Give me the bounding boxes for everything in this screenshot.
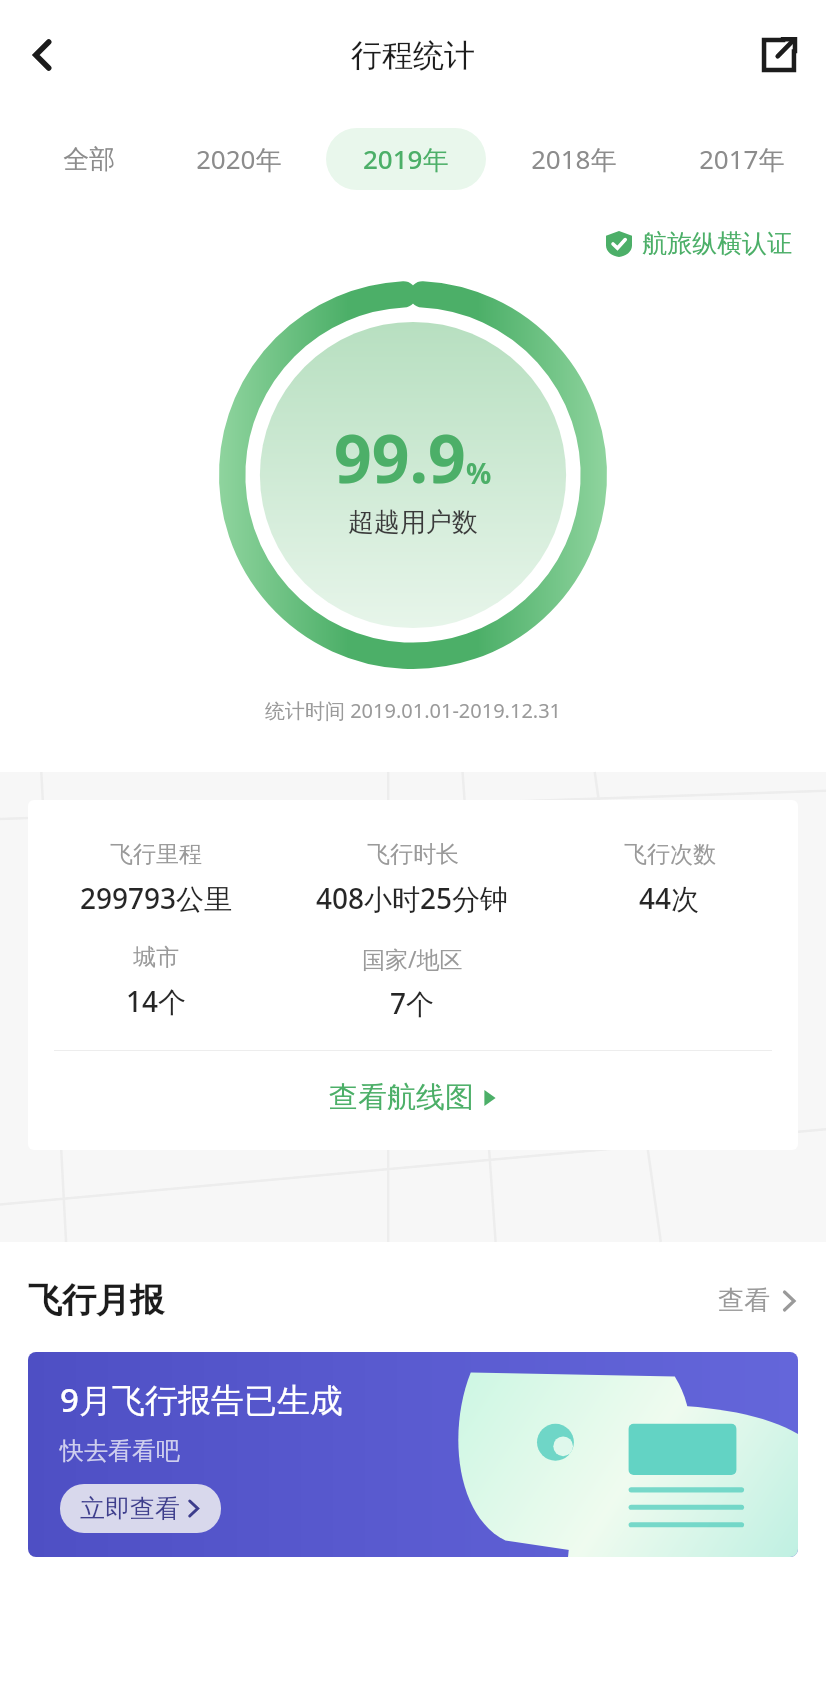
staticText: 2018年	[531, 141, 617, 177]
button[interactable]: 9月飞行报告已生成	[28, 1352, 798, 1557]
button[interactable]: 航旅纵横认证	[0, 228, 792, 259]
staticText: 快去看看吧	[60, 1436, 180, 1466]
button[interactable]: 飞行里程	[28, 800, 798, 1150]
staticText: 飞行月报	[28, 1279, 164, 1322]
button[interactable]: 全部	[63, 128, 115, 190]
staticText: 全部	[63, 143, 115, 176]
button[interactable]: 立即查看	[60, 1484, 221, 1533]
staticText: 查看	[718, 1284, 770, 1317]
staticText: 飞行里程	[110, 840, 202, 869]
staticText: 2019年	[363, 141, 449, 177]
staticText: 行程统计	[351, 36, 475, 75]
staticText: 14个	[126, 982, 187, 1020]
button[interactable]: 查看航线图	[28, 1079, 798, 1116]
button[interactable]: Share	[748, 24, 810, 86]
staticText: 城市	[133, 943, 179, 972]
button[interactable]: 2018年	[531, 128, 617, 190]
staticText: %	[466, 454, 492, 492]
button[interactable]: 2017年	[699, 128, 785, 190]
staticText: 44次	[639, 879, 700, 917]
staticText: 航旅纵横认证	[642, 228, 792, 259]
button[interactable]: 2020年	[196, 128, 282, 190]
staticText: 408小时25分钟	[316, 879, 509, 917]
staticText: 99.9	[334, 412, 466, 502]
staticText: 299793公里	[80, 879, 233, 917]
button[interactable]: 查看	[718, 1284, 798, 1317]
staticText: 统计时间 2019.01.01-2019.12.31	[0, 697, 826, 724]
staticText: 国家/地区	[362, 943, 463, 974]
button[interactable]: Back	[12, 24, 74, 86]
staticText: 查看航线图	[329, 1079, 474, 1116]
staticText: 7个	[390, 984, 435, 1022]
staticText: 立即查看	[80, 1493, 180, 1524]
staticText: 超越用户数	[348, 506, 478, 539]
staticText: 飞行时长	[367, 840, 459, 869]
staticText: 2020年	[196, 141, 282, 177]
staticText: 飞行次数	[624, 840, 716, 869]
staticText: 9月飞行报告已生成	[60, 1377, 343, 1422]
button[interactable]: 2019年	[326, 128, 486, 190]
staticText: 2017年	[699, 141, 785, 177]
